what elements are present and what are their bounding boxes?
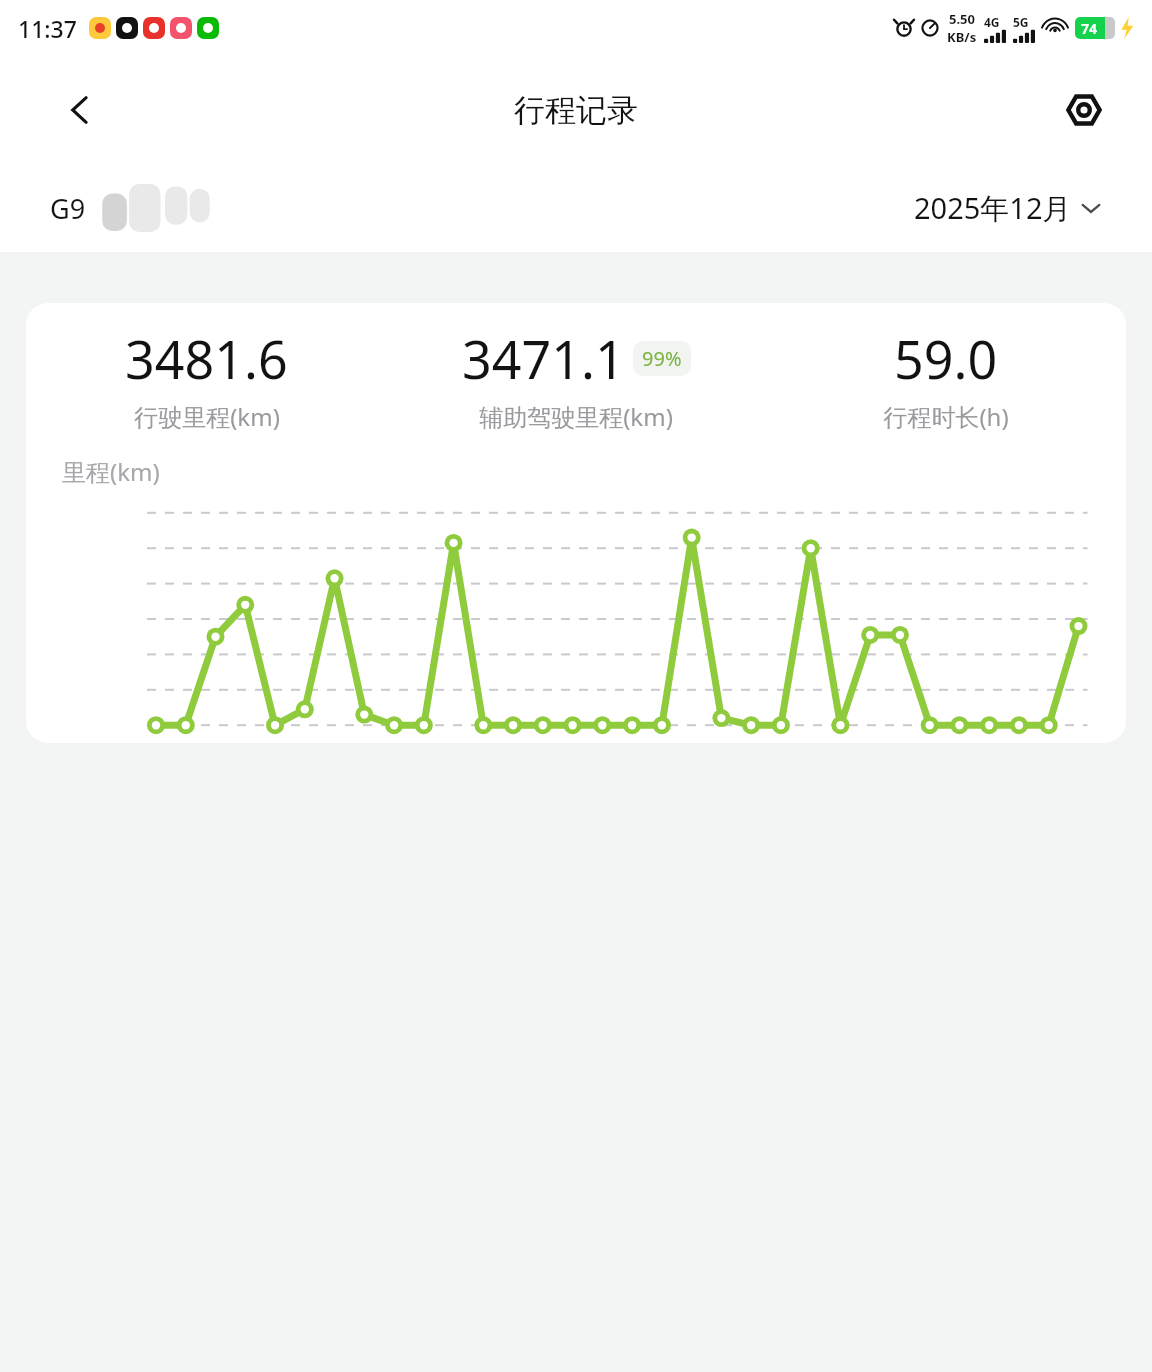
staticText: 辅助驾驶里程(km) bbox=[479, 400, 673, 433]
staticText: 行驶里程(km) bbox=[134, 400, 280, 433]
staticText: 2025年12月 bbox=[914, 188, 1072, 228]
staticText: 4G bbox=[984, 14, 1000, 30]
staticText: 11:37 bbox=[18, 13, 77, 44]
staticText: 59.0 bbox=[894, 323, 998, 394]
staticText: 行程时长(h) bbox=[883, 400, 1009, 433]
button[interactable]: Settings bbox=[1056, 82, 1112, 138]
staticText: 5G bbox=[1013, 14, 1029, 30]
staticText: 里程(km) bbox=[62, 455, 160, 488]
staticText: 3481.6 bbox=[125, 323, 288, 394]
staticText: 3471.1 bbox=[462, 323, 625, 394]
button[interactable]: 2025年12月 bbox=[914, 188, 1102, 228]
staticText: KB/s bbox=[947, 28, 977, 46]
button[interactable]: Back bbox=[52, 82, 108, 138]
staticText: 99% bbox=[642, 345, 682, 372]
staticText: 74 bbox=[1081, 19, 1098, 38]
staticText: G9 bbox=[50, 190, 86, 227]
staticText: 5.50 bbox=[949, 10, 975, 28]
staticText: 行程记录 bbox=[514, 91, 638, 130]
